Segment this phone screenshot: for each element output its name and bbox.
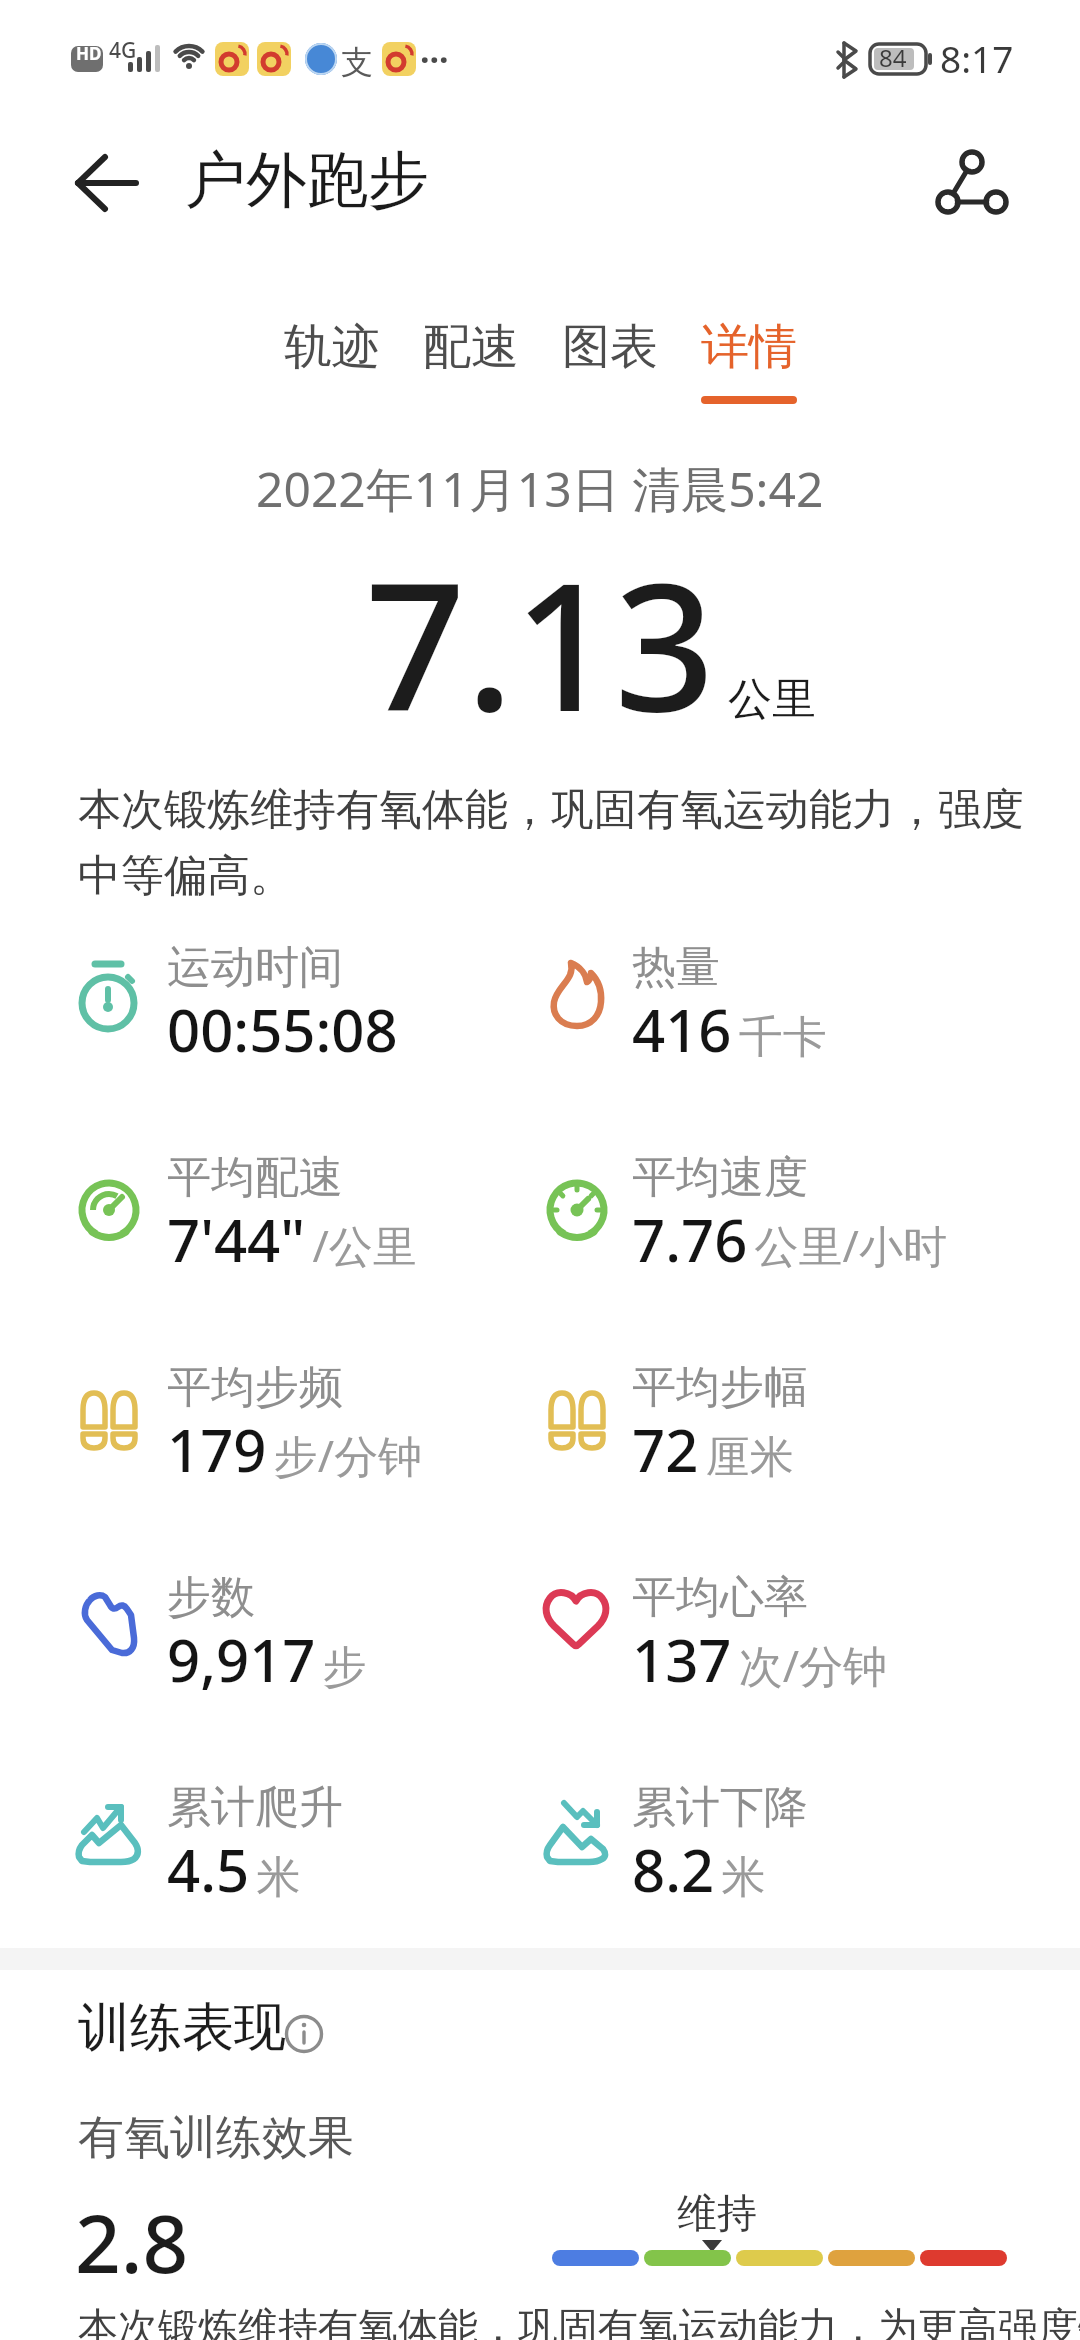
staticText: 2.8 xyxy=(75,2187,189,2296)
staticText: 配速 xyxy=(423,317,519,377)
staticText: 平均速度 xyxy=(632,1150,808,1205)
staticText: 平均心率 xyxy=(632,1570,808,1625)
staticText: 累计爬升 xyxy=(167,1780,343,1835)
staticText: 72 厘米 xyxy=(632,1410,794,1489)
button[interactable] xyxy=(270,2000,330,2060)
staticText: 图表 xyxy=(562,317,658,377)
staticText: 支 xyxy=(341,42,373,82)
button[interactable] xyxy=(60,140,150,230)
staticText: 轨迹 xyxy=(284,317,380,377)
staticText: 步数 xyxy=(167,1570,255,1625)
staticText: 8.2 米 xyxy=(632,1830,766,1909)
button[interactable]: 图表 xyxy=(562,317,658,404)
staticText: 4G xyxy=(109,36,137,65)
button[interactable]: 详情 xyxy=(701,317,797,404)
staticText: 有氧训练效果 xyxy=(78,2109,354,2167)
staticText: 本次锻炼维持有氧体能，巩固有氧运动能力，为更高强度锻 xyxy=(78,2302,1080,2340)
staticText: 7.13 xyxy=(365,523,715,763)
button[interactable] xyxy=(925,130,1025,230)
staticText: 平均步幅 xyxy=(632,1360,808,1415)
staticText: 137 次/分钟 xyxy=(632,1620,888,1699)
staticText: 公里 xyxy=(728,672,816,727)
staticText: 4.5 米 xyxy=(167,1830,301,1909)
staticText: 户外跑步 xyxy=(185,142,429,219)
staticText: 热量 xyxy=(632,940,720,995)
staticText: 84 xyxy=(879,41,907,74)
staticText: 8:17 xyxy=(940,33,1014,83)
staticText: 00:55:08 xyxy=(167,990,398,1069)
staticText: 179 步/分钟 xyxy=(167,1410,423,1489)
staticText: 9,917 步 xyxy=(167,1620,367,1699)
staticText: 详情 xyxy=(701,317,797,377)
staticText: HD xyxy=(76,42,102,65)
staticText: ··· xyxy=(420,36,449,82)
staticText: 7.76 公里/小时 xyxy=(632,1200,947,1279)
staticText: 416 千卡 xyxy=(632,990,827,1069)
staticText: 7'44" /公里 xyxy=(167,1200,417,1279)
staticText: 累计下降 xyxy=(632,1780,808,1835)
staticText: 本次锻炼维持有氧体能，巩固有氧运动能力，强度中等偏高。 xyxy=(78,783,1028,903)
staticText: 平均配速 xyxy=(167,1150,343,1205)
staticText: 维持 xyxy=(677,2188,757,2238)
staticText: 平均步频 xyxy=(167,1360,343,1415)
staticText: 2022年11月13日 清晨5:42 xyxy=(256,456,824,522)
staticText: 训练表现 xyxy=(78,1995,286,2061)
button[interactable]: 配速 xyxy=(423,317,519,404)
button[interactable]: 轨迹 xyxy=(284,317,380,404)
staticText: 运动时间 xyxy=(167,940,343,995)
